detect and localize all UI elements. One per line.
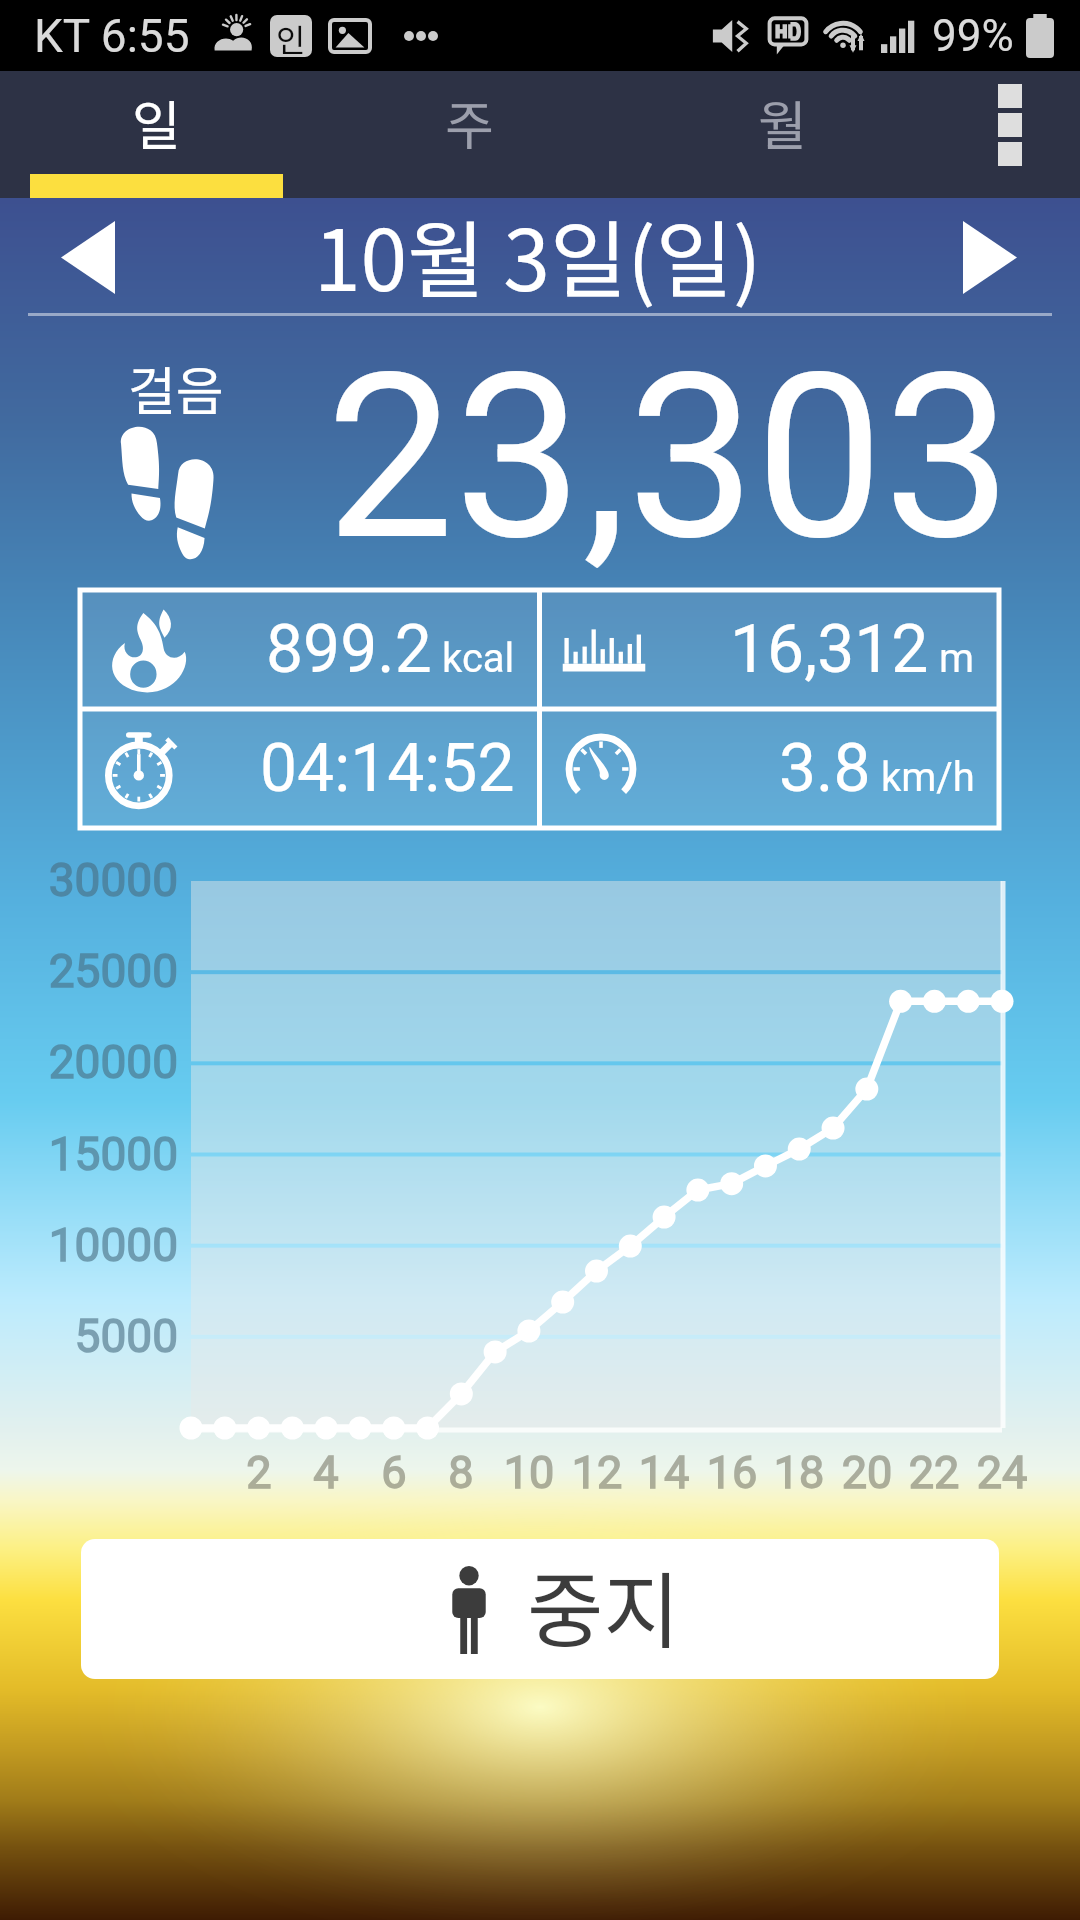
staticText: 주 bbox=[445, 84, 494, 161]
staticText: 3.8 bbox=[779, 730, 871, 807]
staticText: KT 6:55 bbox=[34, 9, 190, 63]
button[interactable]: Previous day bbox=[0, 198, 176, 316]
staticText: 4 bbox=[281, 1446, 371, 1499]
staticText: m bbox=[939, 635, 975, 682]
staticText: km/h bbox=[881, 754, 975, 801]
button[interactable]: 중지 bbox=[81, 1539, 999, 1679]
staticText: 일 bbox=[132, 84, 181, 161]
staticText: 04:14:52 bbox=[260, 730, 515, 807]
staticText: 25000 bbox=[0, 944, 178, 998]
button[interactable]: 주 bbox=[313, 71, 626, 198]
staticText: 8 bbox=[416, 1446, 506, 1499]
staticText: 중지 bbox=[527, 1545, 680, 1665]
staticText: 20000 bbox=[0, 1035, 178, 1089]
staticText: 10월 3일(일) bbox=[314, 194, 762, 312]
staticText: 99% bbox=[932, 10, 1014, 62]
staticText: 10 bbox=[484, 1446, 574, 1499]
staticText: 인 bbox=[276, 15, 306, 57]
staticText: 월 bbox=[758, 84, 807, 161]
button[interactable]: 월 bbox=[626, 71, 939, 198]
staticText: 20 bbox=[822, 1446, 912, 1499]
button[interactable]: More options bbox=[939, 71, 1080, 198]
staticText: 5000 bbox=[0, 1309, 178, 1363]
button[interactable]: Next day bbox=[900, 198, 1080, 316]
staticText: kcal bbox=[442, 635, 515, 682]
staticText: 22 bbox=[889, 1446, 979, 1499]
staticText: 2 bbox=[214, 1446, 304, 1499]
staticText: 15000 bbox=[0, 1127, 178, 1181]
staticText: 18 bbox=[754, 1446, 844, 1499]
staticText: 걸음 bbox=[128, 350, 224, 425]
staticText: 16,312 bbox=[730, 611, 929, 688]
staticText: 12 bbox=[552, 1446, 642, 1499]
staticText: 23,303 bbox=[326, 324, 1012, 591]
staticText: 24 bbox=[957, 1446, 1047, 1499]
staticText: 899.2 bbox=[266, 611, 432, 688]
staticText: 6 bbox=[349, 1446, 439, 1499]
staticText: 14 bbox=[619, 1446, 709, 1499]
staticText: 10000 bbox=[0, 1218, 178, 1272]
staticText: 30000 bbox=[0, 853, 178, 907]
button[interactable]: 일 bbox=[0, 71, 313, 198]
staticText: 16 bbox=[687, 1446, 777, 1499]
